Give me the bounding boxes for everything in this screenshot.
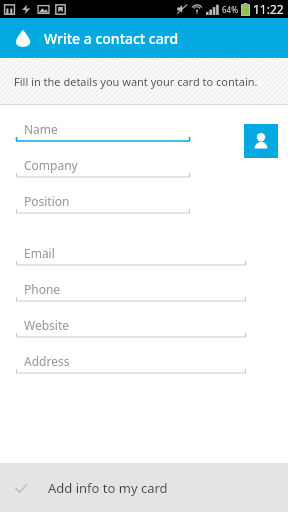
staticText: Company bbox=[24, 157, 78, 173]
other: App logo bbox=[13, 28, 33, 48]
staticText: Add info to my card bbox=[48, 479, 168, 497]
staticText: Email bbox=[24, 245, 55, 261]
button[interactable]: Company bbox=[0, 154, 232, 190]
other: Checked bbox=[14, 481, 28, 495]
button[interactable]: Name bbox=[0, 118, 232, 154]
button[interactable]: Website bbox=[0, 314, 288, 350]
staticText: Address bbox=[24, 353, 70, 369]
button[interactable]: Pick from contacts bbox=[244, 124, 278, 158]
staticText: Website bbox=[24, 317, 70, 333]
button[interactable]: Phone bbox=[0, 278, 288, 314]
staticText: 64% bbox=[222, 4, 238, 15]
staticText: 11:22 bbox=[253, 1, 284, 17]
button[interactable]: Checked bbox=[0, 463, 288, 512]
staticText: Fill in the details you want your card t… bbox=[14, 74, 258, 89]
staticText: Phone bbox=[24, 281, 61, 297]
button[interactable]: App logo bbox=[0, 18, 288, 58]
staticText: Write a contact card bbox=[44, 29, 179, 48]
button[interactable]: Email bbox=[0, 242, 288, 278]
button[interactable]: Address bbox=[0, 350, 288, 386]
staticText: Position bbox=[24, 193, 70, 209]
button[interactable]: Position bbox=[0, 190, 232, 226]
staticText: Name bbox=[24, 121, 58, 137]
